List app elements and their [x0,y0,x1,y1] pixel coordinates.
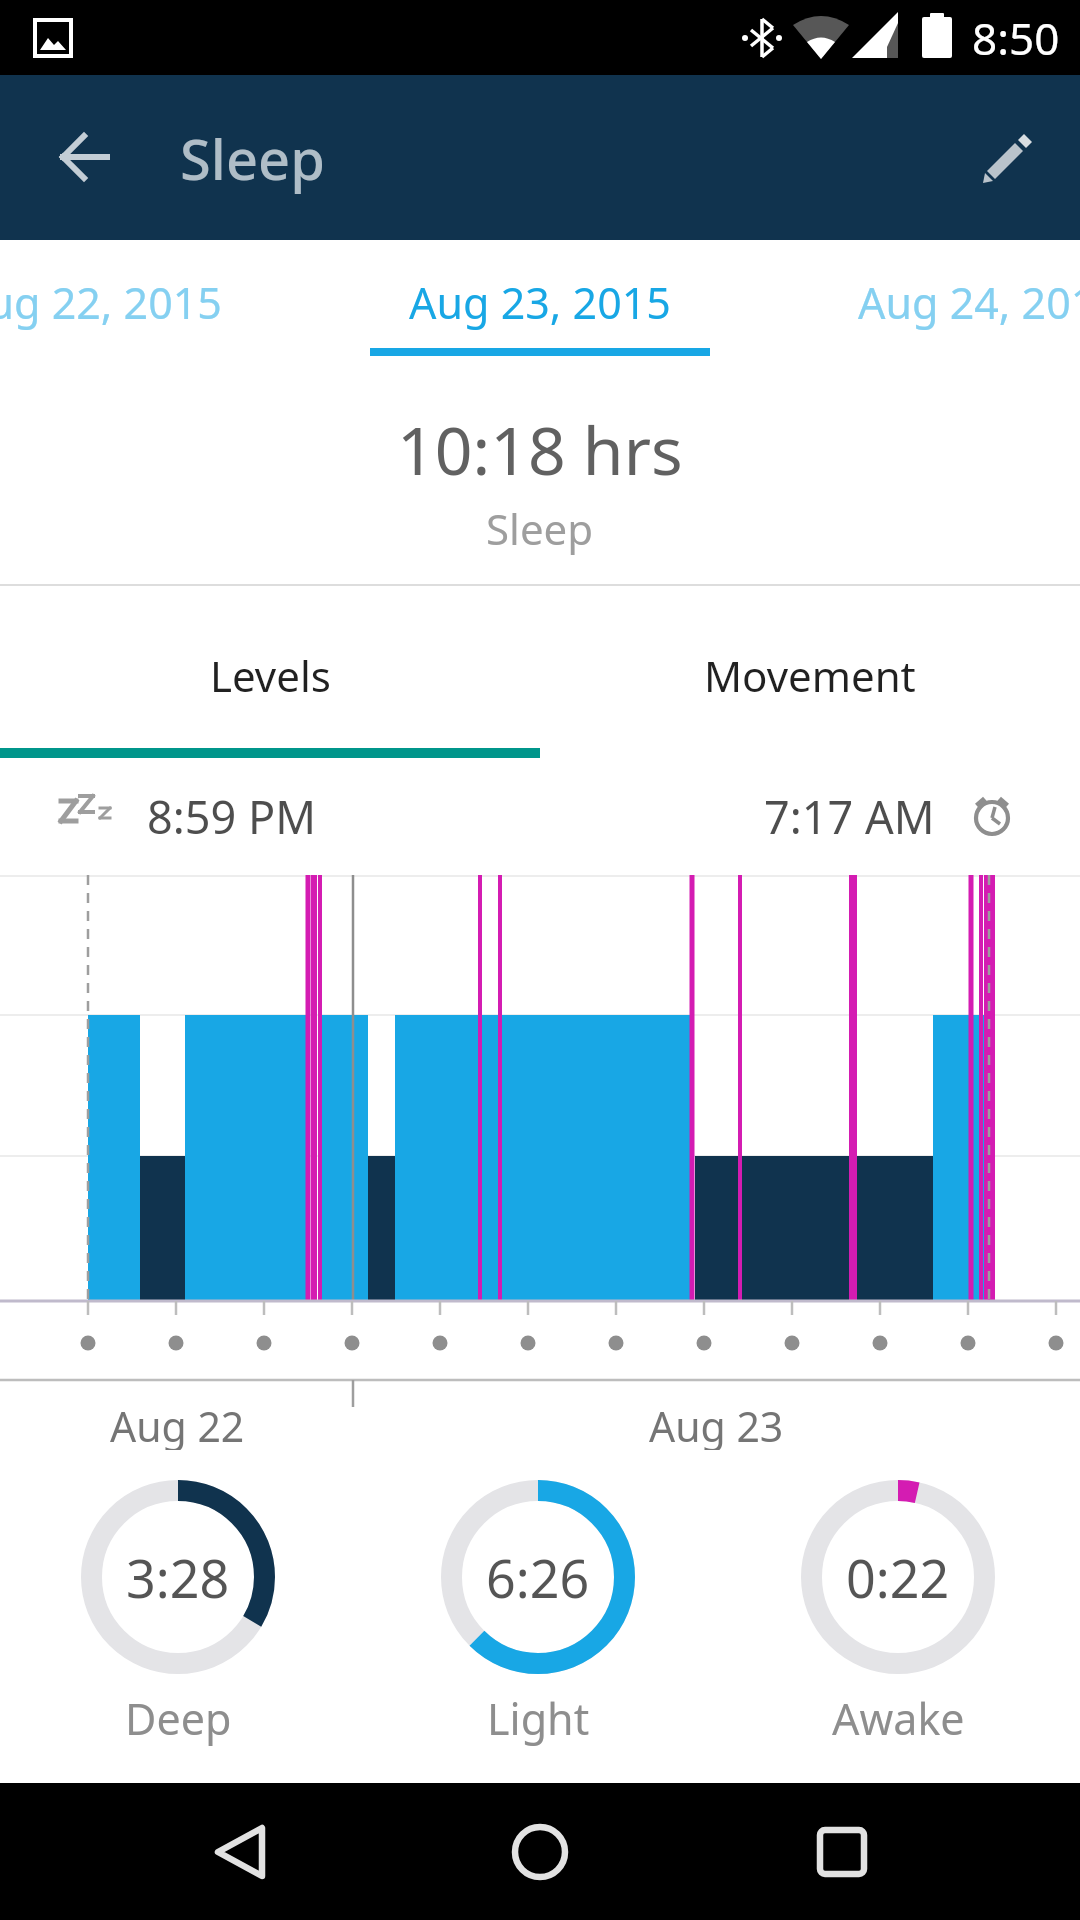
staticText: Sleep [486,500,594,557]
staticText: 3:28 [126,1542,230,1613]
staticText: 8:50 [972,8,1060,68]
button[interactable]: 0:22 [788,1467,1008,1687]
staticText: 10:18 hrs [397,404,683,494]
button[interactable]: Aug 22, 2015 [0,273,222,332]
button[interactable] [772,1783,912,1920]
staticText: 8:59 PM [147,786,317,847]
staticText: 0:22 [846,1542,950,1613]
staticText: Aug 23 [649,1398,784,1450]
staticText: Light [487,1689,590,1748]
staticText: Aug 22, 2015 [0,273,222,332]
staticText: Sleep [180,120,325,196]
button[interactable]: Movement [540,600,1080,758]
button[interactable]: 6:26 [428,1467,648,1687]
button[interactable]: Levels [0,600,540,758]
staticText: Deep [125,1689,232,1748]
staticText: Aug 24, 2015 [858,273,1080,332]
button[interactable] [170,1783,310,1920]
staticText: Aug 23, 2015 [409,273,671,332]
button[interactable]: Aug 23, 2015 [409,273,671,332]
button[interactable]: 3:28 [68,1467,288,1687]
staticText: Movement [704,647,916,704]
button[interactable] [40,112,130,202]
staticText: 7:17 AM [764,786,935,847]
staticText: Aug 22 [110,1398,245,1450]
staticText: 6:26 [486,1542,590,1613]
button[interactable] [960,112,1050,202]
staticText: Levels [210,647,331,704]
button[interactable]: Aug 24, 2015 [858,273,1080,332]
staticText: Awake [832,1689,965,1748]
button[interactable] [470,1783,610,1920]
